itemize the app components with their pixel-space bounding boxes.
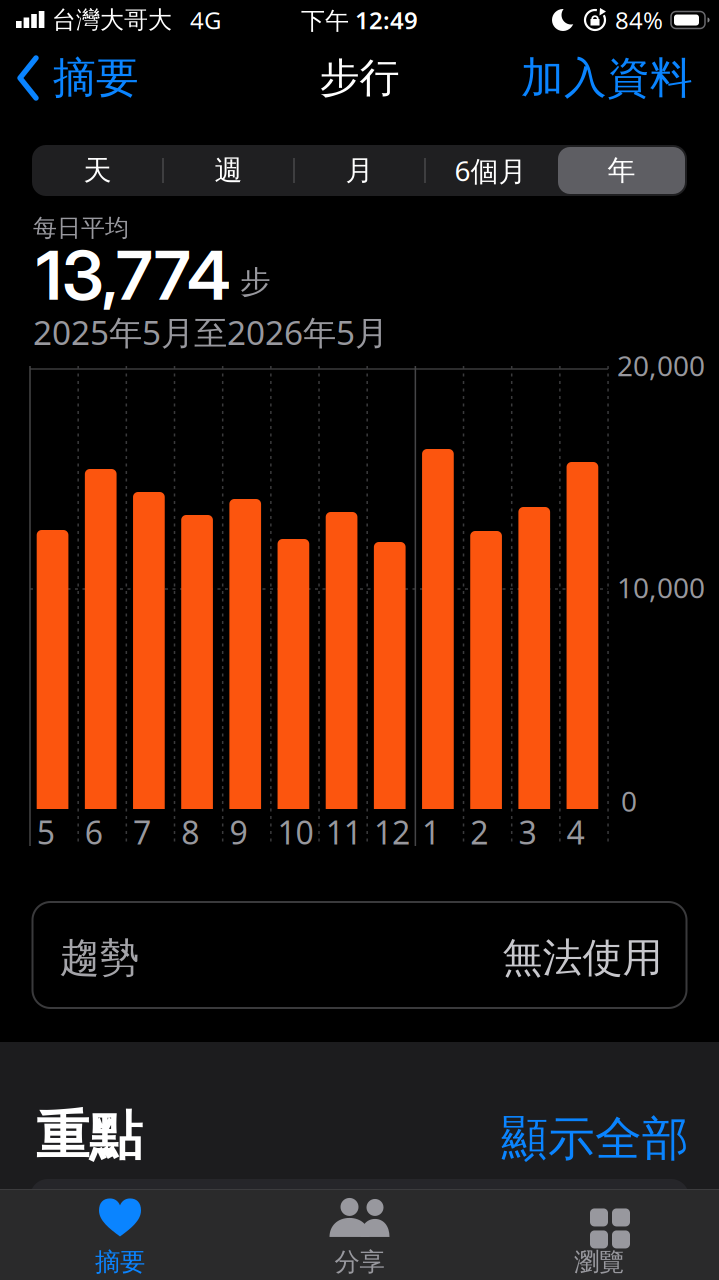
staticText: 週: [214, 153, 242, 188]
staticText: 4: [567, 811, 585, 853]
staticText: 月: [345, 153, 373, 188]
staticText: 4G: [190, 4, 221, 36]
button[interactable]: 月: [294, 145, 425, 196]
staticText: 2025年5月至2026年5月: [33, 310, 388, 354]
button[interactable]: 天: [32, 145, 163, 196]
button[interactable]: 分享: [279, 1199, 439, 1275]
staticText: 84%: [615, 4, 663, 36]
button[interactable]: 週: [163, 145, 294, 196]
button[interactable]: 6個月: [425, 145, 556, 196]
button[interactable]: 摘要: [16, 52, 139, 104]
button[interactable]: 摘要: [40, 1199, 200, 1275]
staticText: 10: [278, 811, 314, 853]
staticText: 無法使用: [502, 933, 662, 982]
staticText: 加入資料: [521, 52, 693, 104]
staticText: 0: [621, 782, 637, 820]
button[interactable]: 加入資料: [521, 52, 693, 104]
button[interactable]: 年: [556, 145, 687, 196]
staticText: 6: [85, 811, 103, 853]
staticText: 分享: [334, 1246, 384, 1277]
staticText: 台灣大哥大: [52, 5, 172, 35]
staticText: 趨勢: [59, 933, 139, 982]
staticText: 13,774: [36, 234, 231, 316]
staticText: 年: [607, 153, 635, 188]
staticText: 1: [422, 811, 440, 853]
staticText: 6個月: [454, 152, 526, 189]
button[interactable]: 趨勢: [32, 902, 686, 1008]
staticText: 7: [133, 811, 151, 853]
staticText: 每日平均: [33, 213, 129, 243]
staticText: 3: [518, 811, 536, 853]
staticText: 12: [374, 811, 410, 853]
staticText: 9: [229, 811, 247, 853]
staticText: 重點: [36, 1103, 142, 1169]
staticText: 天: [83, 153, 111, 188]
staticText: 2: [470, 811, 488, 853]
staticText: 摘要: [95, 1246, 145, 1277]
staticText: 10,000: [617, 569, 705, 606]
staticText: 5: [37, 811, 55, 853]
staticText: 8: [181, 811, 199, 853]
staticText: 下午 12:49: [301, 4, 418, 36]
staticText: 20,000: [617, 347, 705, 384]
staticText: 摘要: [53, 52, 139, 104]
button[interactable]: 顯示全部: [501, 1110, 689, 1168]
staticText: 步行: [319, 53, 399, 102]
staticText: 步: [240, 263, 271, 301]
staticText: 11: [326, 811, 362, 853]
staticText: 瀏覽: [574, 1246, 624, 1277]
button[interactable]: 瀏覽: [519, 1199, 679, 1275]
staticText: 顯示全部: [501, 1110, 689, 1168]
